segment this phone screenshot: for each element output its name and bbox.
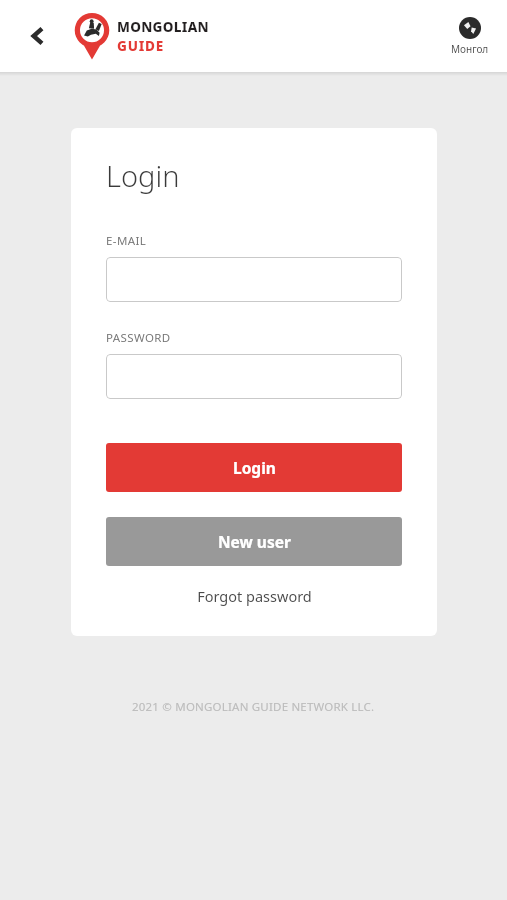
button[interactable] [106,354,402,399]
staticText: Login [233,457,276,478]
button[interactable]: Forgot password [106,586,402,606]
button[interactable]: MONGOLIAN [74,12,209,60]
staticText: Монгол [451,42,489,56]
staticText: 2021 © MONGOLIAN GUIDE NETWORK LLC. [132,699,375,715]
staticText: E-MAIL [106,233,147,249]
button[interactable]: Монгол [451,17,489,56]
staticText: Forgot password [197,586,312,606]
staticText: MONGOLIAN [117,18,209,36]
button[interactable] [106,257,402,302]
button[interactable]: Back [18,16,58,56]
staticText: PASSWORD [106,330,171,346]
staticText: New user [218,531,291,552]
staticText: Login [106,156,180,195]
staticText: GUIDE [117,37,165,55]
button[interactable]: Login [106,443,402,492]
button[interactable]: New user [106,517,402,566]
